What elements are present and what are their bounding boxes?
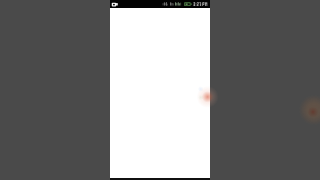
button[interactable] [110, 8, 210, 178]
button[interactable]: System status bar [110, 0, 210, 8]
